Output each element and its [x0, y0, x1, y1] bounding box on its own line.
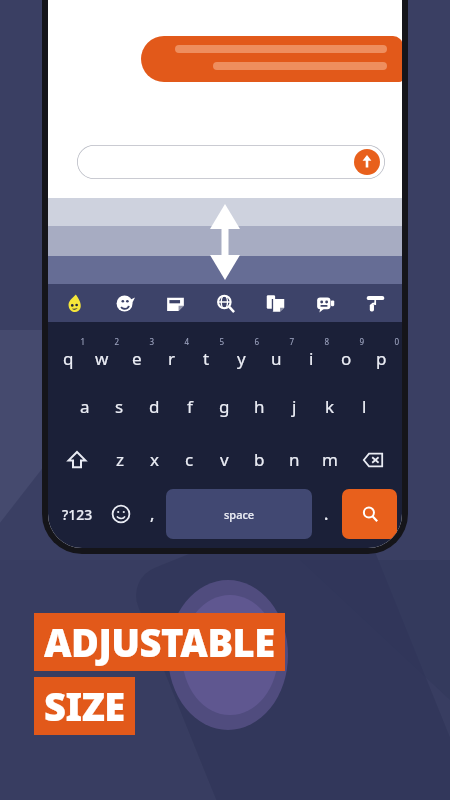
staticText: 0 [394, 336, 399, 347]
button[interactable]: 7 [259, 326, 294, 380]
staticText: k [325, 395, 335, 418]
staticText: SIZE [44, 680, 125, 732]
button[interactable]: Sticker robot [312, 290, 338, 316]
button[interactable]: Emoji [112, 290, 138, 316]
staticText: h [254, 395, 265, 418]
button[interactable]: l [347, 380, 382, 433]
button[interactable]: s [102, 380, 137, 433]
staticText: c [185, 448, 194, 471]
button[interactable]: 9 [329, 326, 364, 380]
button[interactable]: 6 [224, 326, 259, 380]
button[interactable]: Themes [362, 290, 388, 316]
staticText: w [95, 347, 109, 370]
button[interactable]: Search [212, 290, 238, 316]
staticText: space [224, 507, 255, 522]
staticText: u [271, 347, 282, 370]
button[interactable]: j [277, 380, 312, 433]
button[interactable]: m [312, 433, 347, 486]
button[interactable]: Stickers [62, 290, 88, 316]
button[interactable]: f [172, 380, 207, 433]
staticText: m [322, 448, 338, 471]
staticText: r [168, 347, 176, 370]
staticText: i [309, 347, 314, 370]
button[interactable]: Clipboard [262, 290, 288, 316]
button[interactable]: k [312, 380, 347, 433]
button[interactable]: n [277, 433, 312, 486]
button[interactable]: a [68, 380, 102, 433]
button[interactable]: Send [354, 149, 380, 175]
button[interactable]: Send [77, 145, 385, 179]
button[interactable]: GIF [162, 290, 188, 316]
staticText: z [116, 448, 124, 471]
button[interactable]: 5 [189, 326, 224, 380]
staticText: 3 [149, 336, 154, 347]
button[interactable]: h [242, 380, 277, 433]
button[interactable]: 2 [85, 326, 119, 380]
button[interactable]: 1 [51, 326, 85, 380]
staticText: t [203, 347, 210, 370]
staticText: d [149, 395, 160, 418]
staticText: 6 [254, 336, 259, 347]
staticText: n [289, 448, 300, 471]
button[interactable]: 8 [294, 326, 329, 380]
button[interactable]: Emoji [103, 486, 138, 542]
staticText: 7 [289, 336, 294, 347]
staticText: j [292, 395, 297, 418]
staticText: ADJUSTABLE [44, 616, 275, 668]
button[interactable]: g [207, 380, 242, 433]
button[interactable]: Search [342, 489, 397, 539]
button[interactable]: , [138, 486, 166, 542]
staticText: b [254, 448, 265, 471]
staticText: l [362, 395, 367, 418]
staticText: 5 [219, 336, 224, 347]
button[interactable]: 4 [154, 326, 189, 380]
staticText: 9 [359, 336, 364, 347]
staticText: g [219, 395, 230, 418]
staticText: 2 [114, 336, 119, 347]
staticText: ?123 [62, 505, 93, 524]
button[interactable]: c [172, 433, 207, 486]
staticText: o [341, 347, 352, 370]
staticText: 8 [324, 336, 329, 347]
staticText: v [220, 448, 229, 471]
staticText: y [237, 347, 246, 370]
button[interactable]: v [207, 433, 242, 486]
staticText: 4 [184, 336, 189, 347]
staticText: p [376, 347, 387, 370]
button[interactable] [141, 36, 402, 82]
button[interactable]: z [102, 433, 137, 486]
button[interactable]: . [312, 486, 340, 542]
staticText: . [324, 503, 329, 525]
button[interactable]: 3 [119, 326, 154, 380]
staticText: a [80, 395, 90, 418]
button[interactable]: ?123 [51, 486, 103, 542]
staticText: x [150, 448, 159, 471]
staticText: e [132, 347, 142, 370]
staticText: f [187, 395, 193, 418]
staticText: , [150, 503, 155, 525]
button[interactable]: 0 [364, 326, 399, 380]
button[interactable]: d [137, 380, 172, 433]
button[interactable]: b [242, 433, 277, 486]
button[interactable]: Backspace [347, 433, 399, 486]
staticText: s [115, 395, 124, 418]
button[interactable]: Shift [51, 433, 102, 486]
staticText: q [63, 347, 74, 370]
staticText: 1 [80, 336, 85, 347]
button[interactable]: x [137, 433, 172, 486]
button[interactable]: space [166, 489, 312, 539]
